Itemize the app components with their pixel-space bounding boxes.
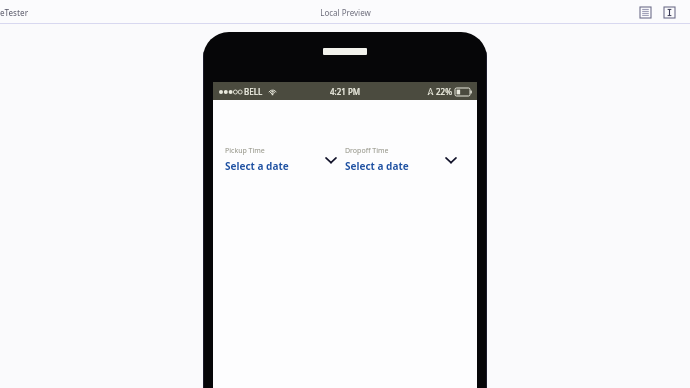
button[interactable]: Device settings <box>662 5 676 19</box>
button[interactable]: Pickup Time <box>225 144 345 175</box>
staticText: Pickup Time <box>225 146 265 156</box>
button[interactable]: Logs <box>638 5 652 19</box>
staticText: Select a date <box>345 159 409 173</box>
staticText: 22% <box>436 86 452 97</box>
staticText: 4:21 PM <box>330 86 361 97</box>
button[interactable]: Dropoff Time <box>345 144 465 175</box>
staticText: Local Preview <box>320 7 371 18</box>
staticText: BELL <box>244 86 263 97</box>
staticText: Select a date <box>225 159 289 173</box>
staticText: Dropoff Time <box>345 146 389 156</box>
staticText: eTester <box>0 7 29 18</box>
